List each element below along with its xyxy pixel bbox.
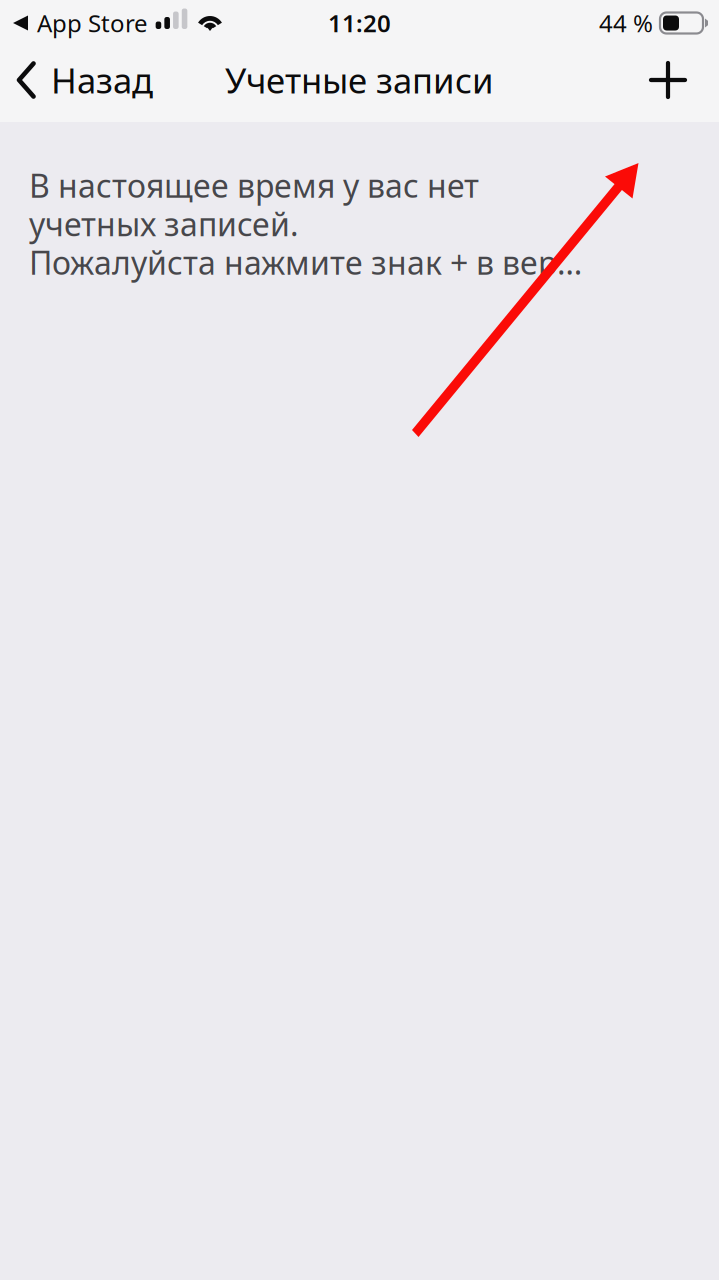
staticText: App Store bbox=[37, 7, 148, 39]
staticText: Назад bbox=[51, 57, 153, 103]
button[interactable]: Назад bbox=[0, 46, 165, 122]
button[interactable]: Back to App Store bbox=[0, 0, 148, 46]
staticText: учетных записей. bbox=[29, 202, 299, 245]
staticText: В настоящее время у вас нет bbox=[29, 164, 479, 206]
staticText: Учетные записи bbox=[225, 57, 494, 103]
button[interactable]: Add account bbox=[633, 46, 719, 122]
staticText: 44 % bbox=[599, 7, 653, 39]
staticText: Пожалуйста нажмите знак + в вер… bbox=[29, 241, 582, 283]
staticText: 11:20 bbox=[328, 7, 391, 39]
